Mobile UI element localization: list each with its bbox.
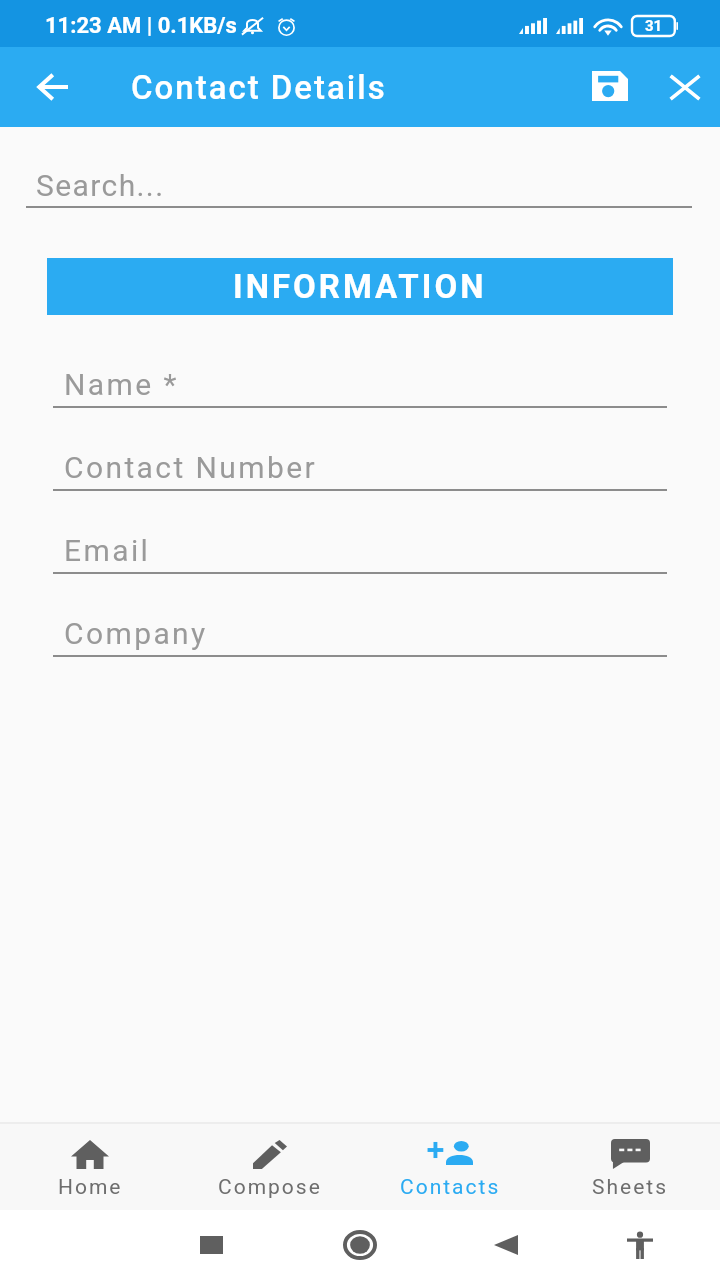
staticText: 11:23 AM | 0.1KB/s: [45, 13, 237, 39]
button[interactable]: INFORMATION: [47, 258, 673, 315]
button[interactable]: Contact Number: [0, 408, 720, 491]
staticText: INFORMATION: [233, 267, 487, 306]
staticText: Home: [58, 1175, 123, 1200]
button[interactable]: Sheets: [540, 1134, 720, 1200]
staticText: Sheets: [592, 1175, 669, 1200]
staticText: Email: [64, 533, 151, 568]
button[interactable]: Email: [0, 491, 720, 574]
button[interactable]: Search...: [0, 133, 720, 208]
button[interactable]: Contacts: [360, 1134, 540, 1200]
button[interactable]: Name *: [0, 325, 720, 408]
staticText: Contact Number: [64, 450, 318, 485]
staticText: Company: [64, 616, 208, 651]
button[interactable]: Compose: [180, 1134, 360, 1200]
staticText: Name *: [64, 367, 179, 402]
button[interactable]: Company: [0, 574, 720, 657]
staticText: Contact Details: [131, 68, 387, 107]
staticText: Contacts: [400, 1175, 501, 1200]
button[interactable]: Back: [26, 61, 78, 113]
button[interactable]: Home: [330, 1215, 390, 1275]
button[interactable]: Close: [657, 59, 713, 115]
button[interactable]: Home: [0, 1134, 180, 1200]
button[interactable]: Save: [582, 59, 638, 115]
button[interactable]: Accessibility: [610, 1215, 670, 1275]
button[interactable]: Back: [476, 1215, 536, 1275]
staticText: Search...: [36, 168, 165, 203]
button[interactable]: Recents: [181, 1215, 241, 1275]
staticText: 31: [645, 17, 663, 35]
staticText: Compose: [218, 1175, 322, 1200]
